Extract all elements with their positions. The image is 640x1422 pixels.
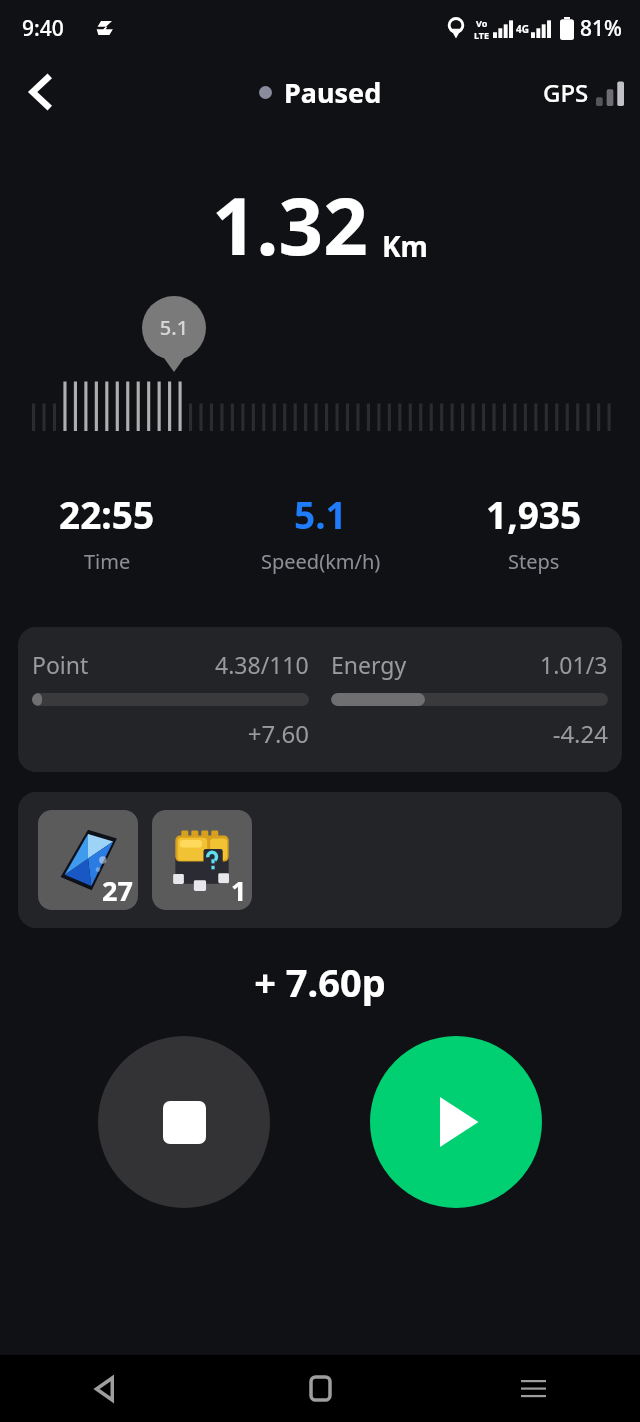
staticText: 5.1 bbox=[142, 314, 206, 341]
staticText: 81% bbox=[580, 14, 622, 43]
staticText: 1 bbox=[231, 872, 247, 909]
staticText: 1.01/3 bbox=[540, 649, 608, 680]
button[interactable]: 27 bbox=[38, 810, 138, 910]
staticText: 5.1 bbox=[294, 489, 347, 539]
staticText: Energy bbox=[331, 649, 407, 680]
button[interactable]: Home bbox=[214, 1355, 427, 1422]
button[interactable]: Stop bbox=[98, 1036, 270, 1208]
button[interactable]: Back bbox=[0, 1355, 214, 1422]
staticText: 4G bbox=[516, 22, 529, 36]
button[interactable]: 22:55 bbox=[0, 489, 214, 575]
staticText: GPS bbox=[543, 76, 589, 109]
button[interactable]: 5.1 bbox=[214, 489, 427, 575]
staticText: Speed(km/h) bbox=[261, 548, 381, 575]
button[interactable]: 1,935 bbox=[427, 489, 640, 575]
staticText: + 7.60p bbox=[0, 956, 640, 1008]
staticText: -4.24 bbox=[331, 717, 608, 750]
button[interactable]: GPS bbox=[543, 76, 624, 109]
staticText: Km bbox=[382, 227, 428, 265]
staticText: 1,935 bbox=[486, 489, 582, 539]
staticText: LTE bbox=[474, 29, 490, 41]
staticText: Steps bbox=[508, 548, 560, 575]
staticText: 22:55 bbox=[59, 489, 155, 539]
button[interactable]: Back bbox=[10, 60, 74, 124]
staticText: 1.32 bbox=[212, 172, 368, 278]
button[interactable]: Point bbox=[18, 627, 622, 772]
staticText: 4.38/110 bbox=[215, 649, 309, 680]
staticText: Paused bbox=[284, 74, 382, 111]
staticText: 27 bbox=[102, 872, 133, 909]
staticText: +7.60 bbox=[32, 717, 309, 750]
staticText: Time bbox=[84, 548, 131, 575]
button[interactable]: 1 bbox=[152, 810, 252, 910]
staticText: Point bbox=[32, 649, 89, 680]
staticText: 9:40 bbox=[22, 14, 64, 43]
staticText: Vo bbox=[476, 17, 488, 29]
button[interactable]: Recent apps bbox=[427, 1355, 640, 1422]
button[interactable]: Resume bbox=[370, 1036, 542, 1208]
